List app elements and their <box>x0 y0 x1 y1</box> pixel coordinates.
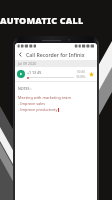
staticText: - Improve productivity <box>18 107 58 112</box>
staticText: Meeting with marketing team <box>18 95 72 100</box>
staticText: AUTOMATIC CALL RECORDER <box>0 14 112 26</box>
button[interactable]: Back <box>15 49 26 60</box>
staticText: 363Kb <box>76 75 86 79</box>
staticText: 00:46 <box>77 70 86 74</box>
staticText: - Improve sales <box>18 101 46 106</box>
staticText: Jul 09 2020 <box>18 61 37 66</box>
button[interactable]: Favourite <box>87 70 95 78</box>
button[interactable]: Play recording <box>15 67 97 81</box>
staticText: +1 13 45 <box>27 70 42 75</box>
staticText: NOTES : <box>18 86 32 91</box>
staticText: Call Recorder for Infinix <box>26 51 85 58</box>
button[interactable]: Play recording <box>17 70 25 78</box>
